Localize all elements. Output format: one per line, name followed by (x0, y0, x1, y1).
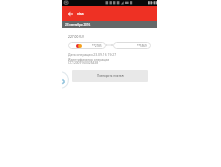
button[interactable]: Next (51, 71, 68, 88)
button[interactable]: **5569 (113, 42, 151, 49)
staticText: Повторить платеж (97, 74, 124, 78)
staticText: 23 сентября 2016 (65, 23, 91, 27)
staticText: visa (77, 11, 84, 16)
staticText: 227.00 (68, 34, 79, 38)
staticText: CC12009160026438 (68, 61, 99, 65)
staticText: Дата операции 23.09.16 19:27 (68, 52, 117, 57)
button[interactable]: Повторить платеж (72, 70, 148, 82)
staticText: RUR (79, 35, 85, 39)
staticText: **2185 (92, 44, 102, 48)
staticText: Идентификатор операции (68, 58, 110, 62)
staticText: **5569 (137, 44, 147, 48)
button[interactable]: **2185 (68, 42, 106, 49)
button[interactable]: Back (64, 6, 77, 21)
